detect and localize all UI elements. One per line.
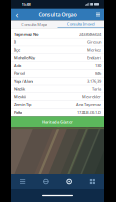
staticText: Consulta Imovel — [67, 21, 95, 27]
staticText: Endüstri — [87, 55, 101, 60]
staticText: Zemin Tip — [14, 102, 31, 107]
staticText: İlçe — [14, 47, 20, 52]
staticText: 24330466024 — [79, 32, 101, 37]
button[interactable]: Consulta Mapa — [11, 20, 57, 28]
staticText: 846 — [95, 71, 101, 76]
staticText: Ada — [14, 63, 21, 68]
staticText: 17-III-B-(3)-1-D — [77, 110, 101, 115]
staticText: Merkez — [87, 47, 101, 52]
button[interactable]: Map — [34, 174, 57, 189]
button[interactable]: Back — [13, 8, 21, 20]
staticText: 15:48 — [21, 2, 30, 7]
staticText: ‹ — [15, 8, 18, 21]
button[interactable]: More — [81, 174, 104, 189]
staticText: 3.176,39 — [87, 78, 101, 84]
staticText: Ana Taşınmaz — [76, 102, 101, 107]
button[interactable]: Haritada Göster — [11, 116, 104, 127]
staticText: Consulta Mapa — [21, 22, 47, 27]
button[interactable]: List — [11, 174, 34, 189]
staticText: Nitelik — [14, 86, 25, 91]
staticText: 130 — [95, 63, 101, 68]
staticText: Parsel — [14, 71, 25, 76]
staticText: İl — [14, 39, 16, 45]
staticText: Consulta Orgao — [38, 11, 76, 18]
button[interactable]: Consulta Imovel — [57, 20, 104, 28]
button[interactable]: Menu — [94, 8, 102, 20]
staticText: Mahalle/Köy — [14, 55, 35, 60]
staticText: Pafta — [14, 110, 22, 115]
staticText: Giresun — [87, 39, 101, 45]
staticText: Taşınmaz No — [14, 32, 38, 37]
button[interactable]: Location — [57, 174, 81, 189]
staticText: Haritada Göster — [42, 119, 73, 125]
staticText: Mevkii — [14, 94, 26, 99]
staticText: Tarla — [92, 86, 101, 91]
staticText: Yapı / Alanı — [14, 78, 33, 84]
staticText: Mevrekler — [82, 94, 101, 99]
